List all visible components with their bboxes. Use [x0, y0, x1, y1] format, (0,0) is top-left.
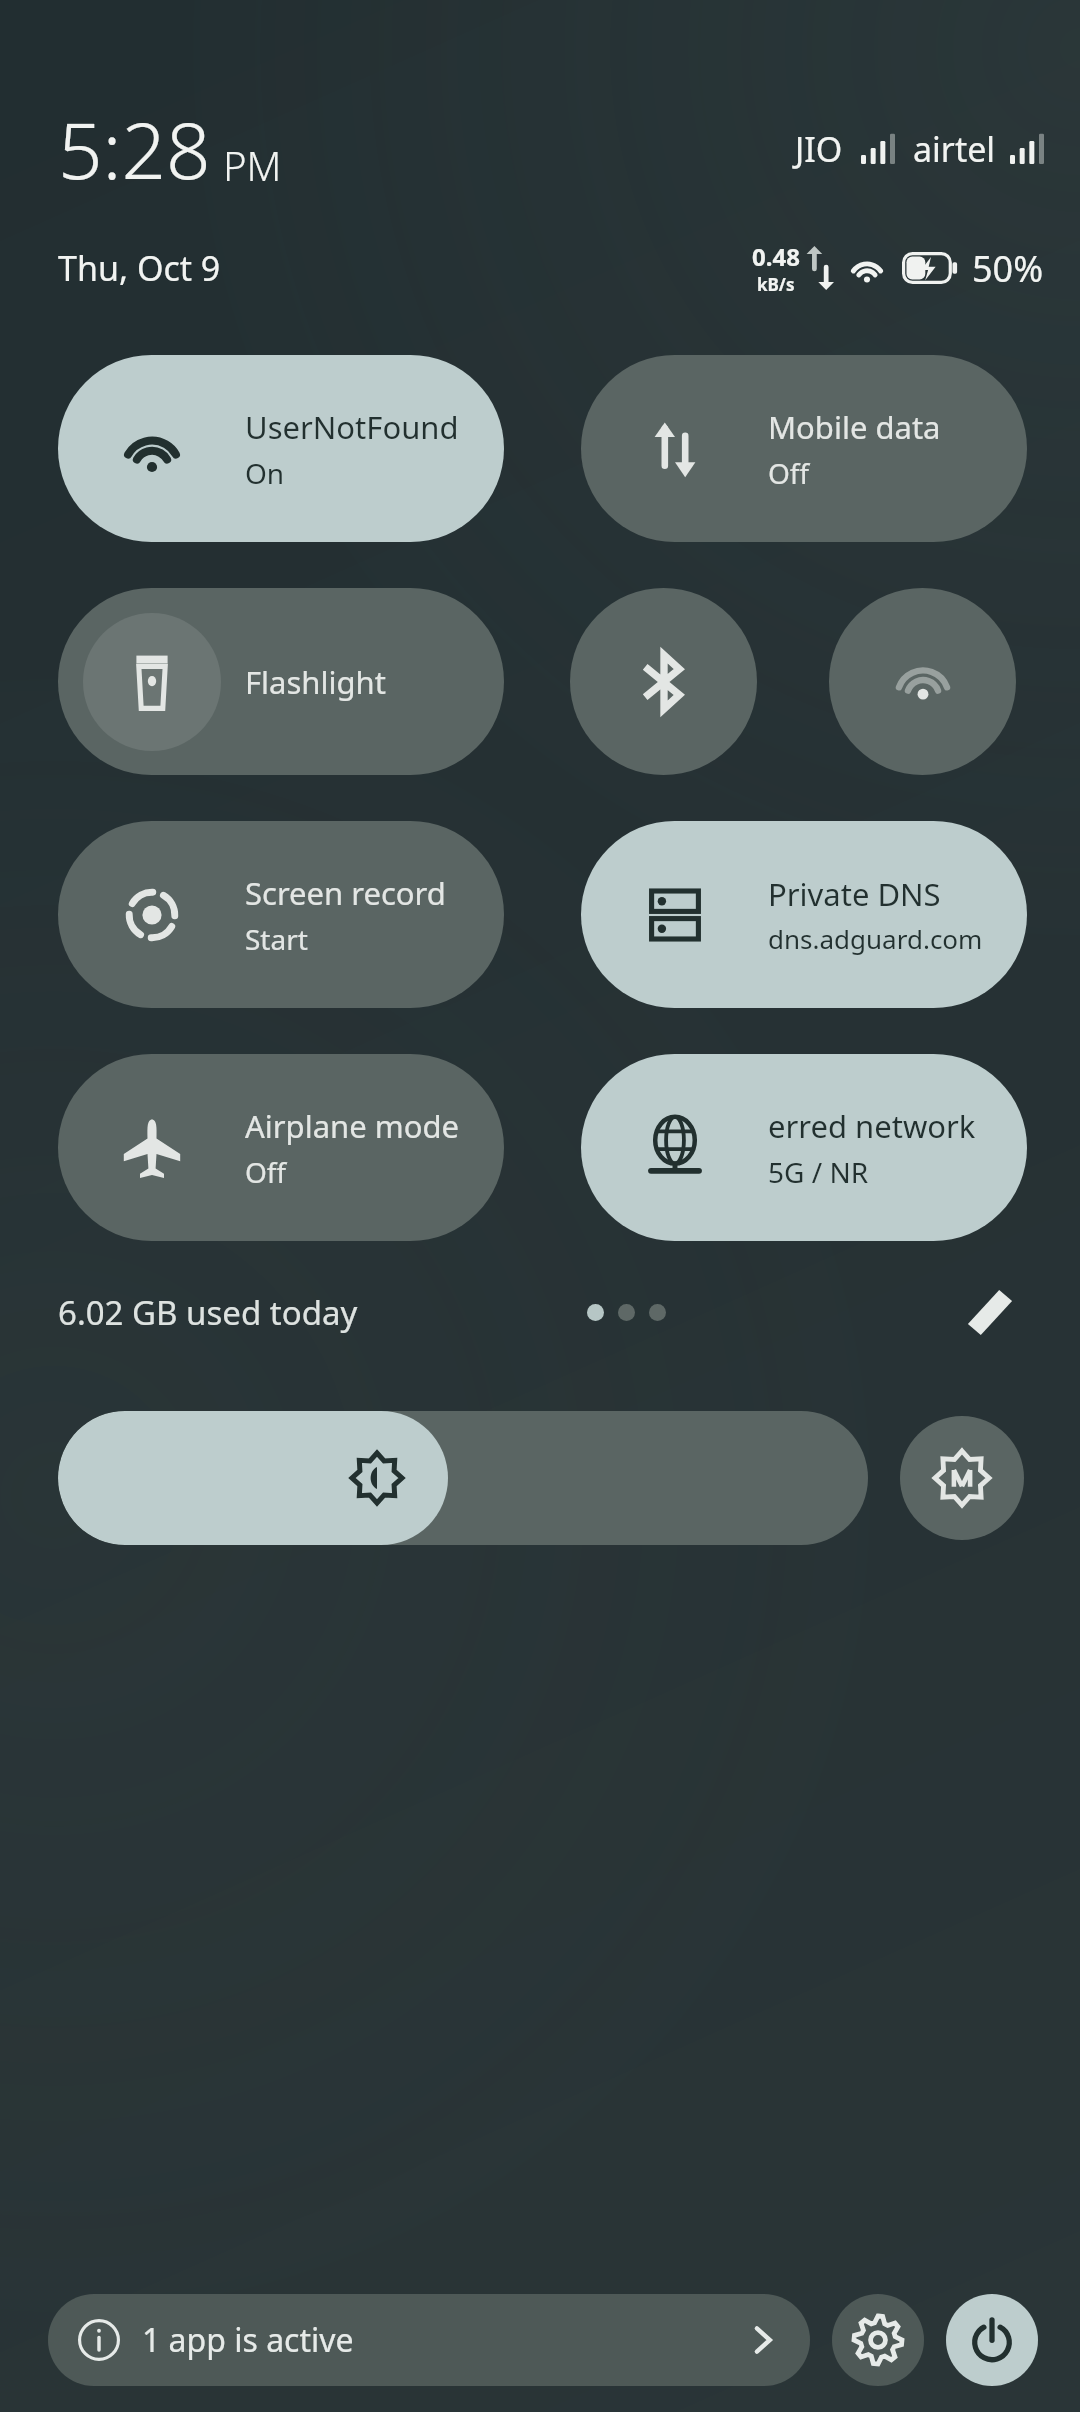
button[interactable]: Auto brightness — [900, 1416, 1024, 1540]
staticText: 1 app is active — [142, 2318, 354, 2362]
staticText: UserNotFound — [245, 406, 459, 448]
staticText: On — [245, 454, 285, 492]
staticText: Private DNS — [768, 873, 941, 915]
button[interactable]: 1 app is active — [48, 2294, 810, 2386]
staticText: PM — [223, 138, 282, 192]
button[interactable]: Brightness — [58, 1411, 868, 1545]
button[interactable]: Edit tiles — [952, 1274, 1028, 1350]
staticText: erred network — [768, 1105, 976, 1147]
staticText: kB/s — [757, 273, 795, 296]
button[interactable]: Airplane mode — [58, 1054, 504, 1241]
staticText: Airplane mode — [245, 1105, 460, 1147]
button[interactable]: Screen record — [58, 821, 504, 1008]
staticText: Off — [768, 454, 810, 492]
button[interactable]: Power — [946, 2294, 1038, 2386]
staticText: 5:28 — [58, 96, 211, 202]
staticText: 50% — [972, 244, 1044, 293]
staticText: airtel — [913, 126, 996, 172]
button[interactable]: Mobile data — [581, 355, 1027, 542]
staticText: dns.adguard.com — [768, 921, 983, 956]
staticText: Mobile data — [768, 406, 941, 448]
staticText: 0.48 — [752, 240, 800, 273]
staticText: 5G / NR — [768, 1153, 869, 1191]
staticText: Off — [245, 1153, 287, 1191]
staticText: Start — [245, 920, 308, 958]
staticText: JIO — [795, 126, 843, 172]
button[interactable]: Bluetooth — [570, 588, 757, 775]
button[interactable]: UserNotFound — [58, 355, 504, 542]
button[interactable]: Settings — [832, 2294, 924, 2386]
button[interactable]: Flashlight — [58, 588, 504, 775]
staticText: 6.02 GB used today — [58, 1290, 358, 1335]
staticText: Screen record — [245, 872, 446, 914]
button[interactable]: Private DNS — [581, 821, 1027, 1008]
staticText: Flashlight — [245, 661, 386, 703]
button[interactable]: Cast — [829, 588, 1016, 775]
staticText: Thu, Oct 9 — [58, 245, 221, 291]
button[interactable]: erred network — [581, 1054, 1027, 1241]
